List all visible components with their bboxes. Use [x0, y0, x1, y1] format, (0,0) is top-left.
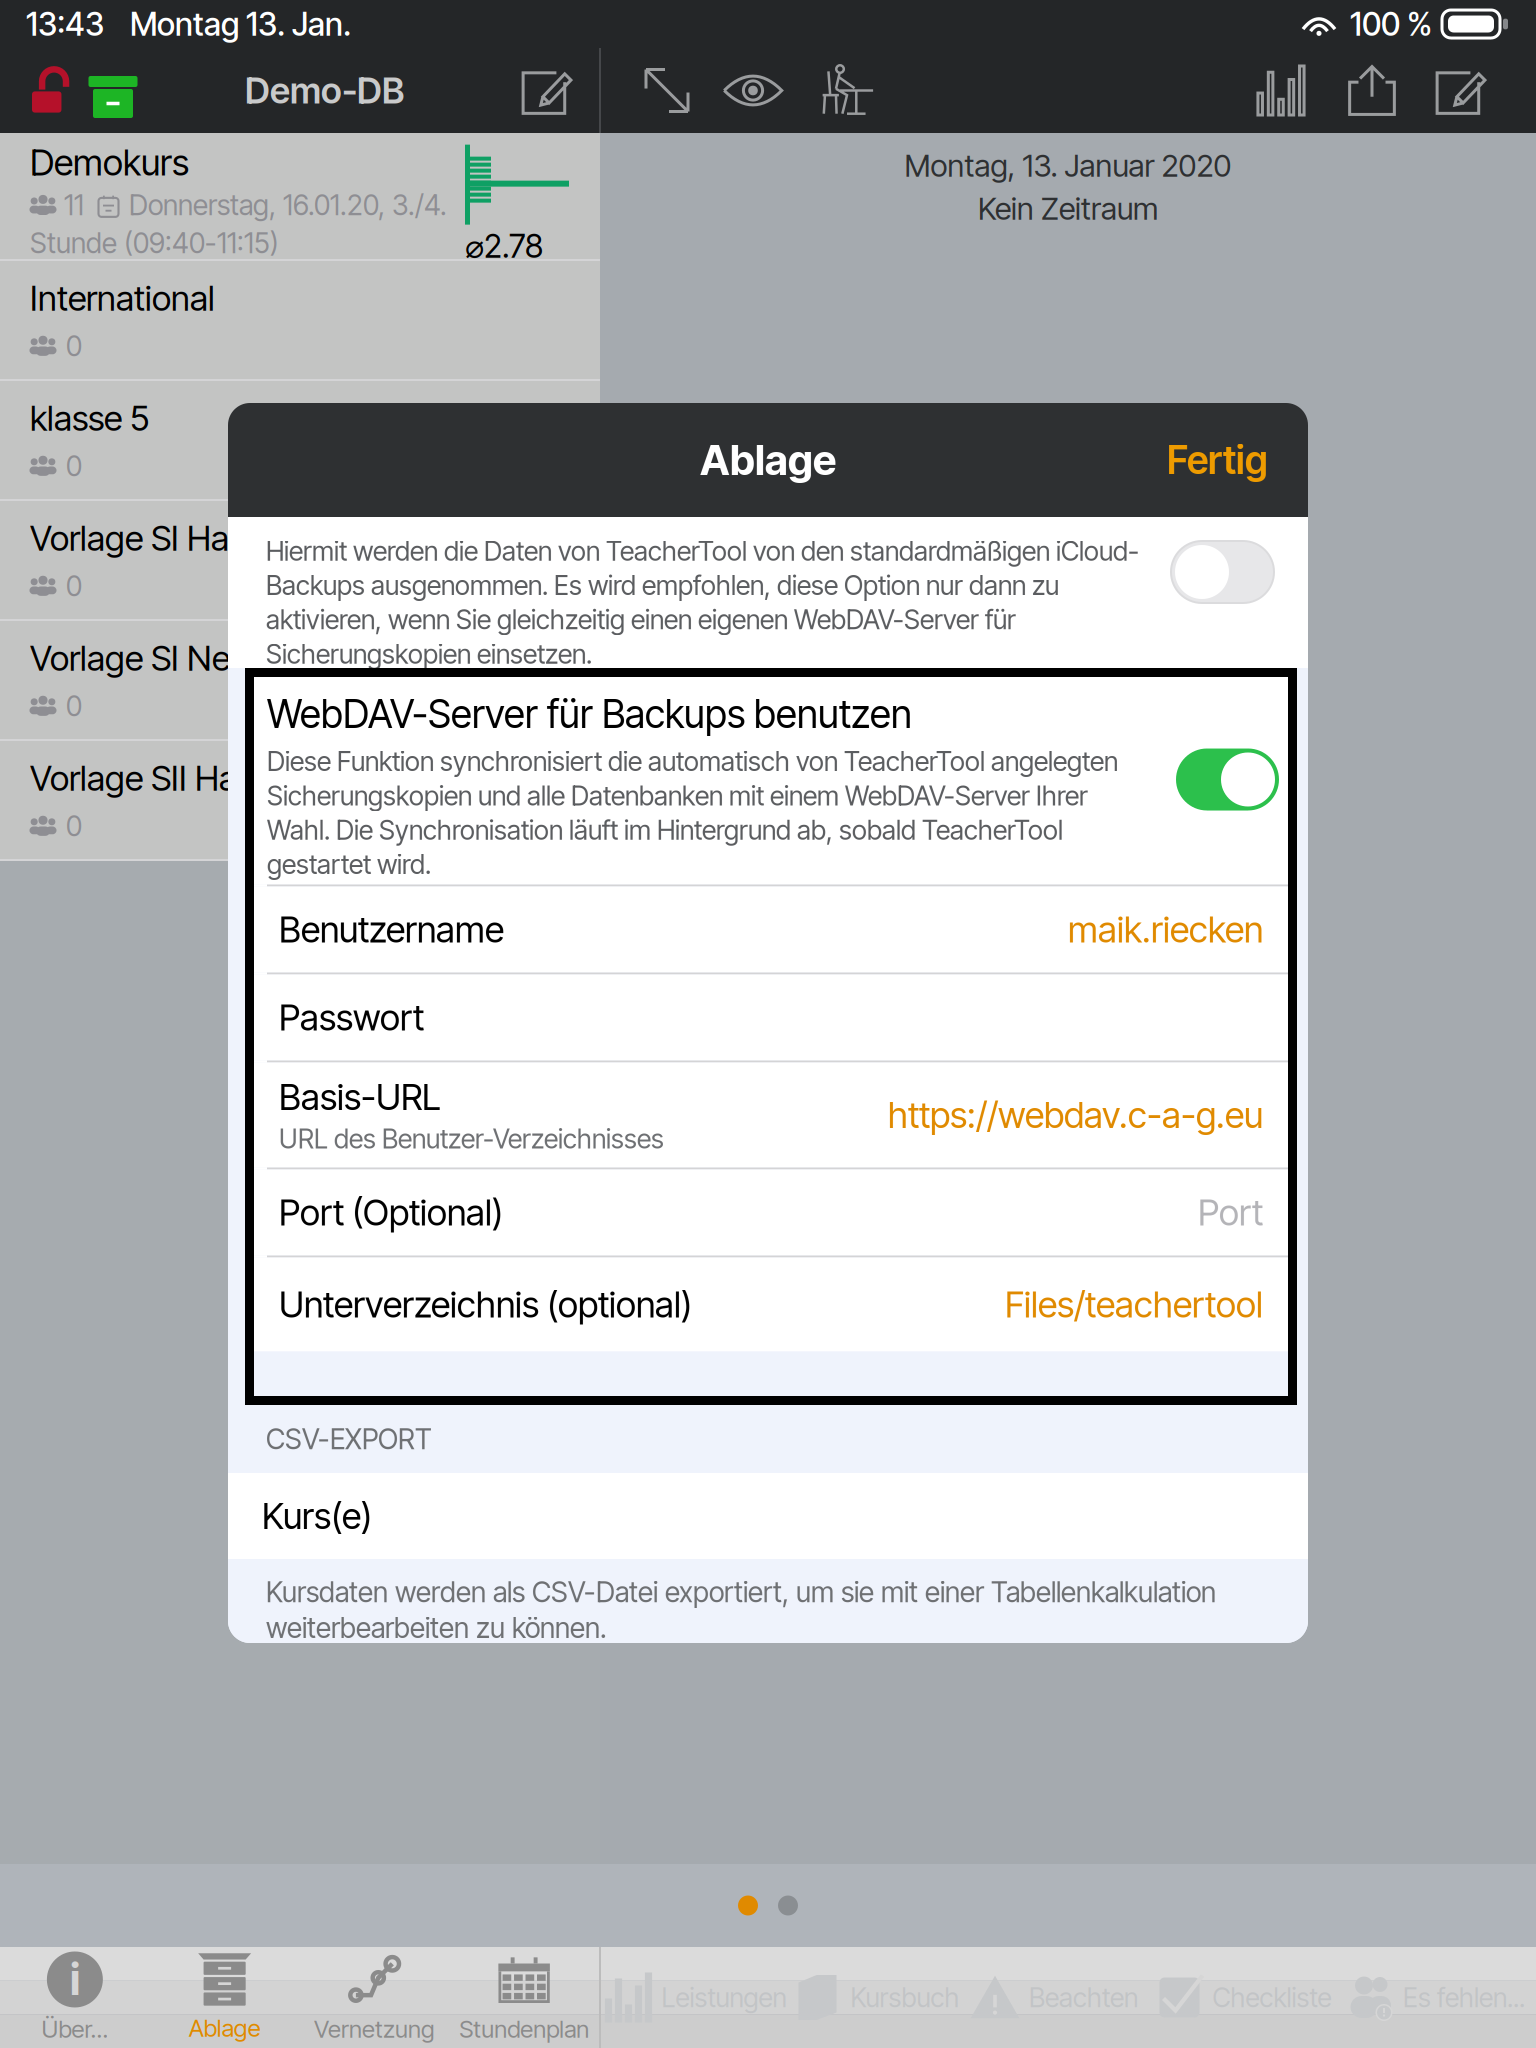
staticText: Checkliste: [1212, 1981, 1331, 2014]
staticText: 13:43: [26, 5, 104, 43]
button[interactable]: Beachten: [963, 1947, 1149, 2048]
staticText: Sicherungskopien einsetzen.: [266, 638, 592, 670]
button[interactable]: Ablage: [150, 1947, 300, 2048]
staticText: Vorlage SI Halbjahr: [30, 517, 310, 559]
button[interactable]: Teilen: [1326, 48, 1418, 133]
staticText: URL des Benutzer-Verzeichnisses: [279, 1123, 664, 1155]
button[interactable]: Port (Optional): [245, 1169, 1297, 1255]
staticText: 0: [66, 329, 82, 363]
button[interactable]: Vollbild: [629, 48, 705, 133]
staticText: Backups ausgenommen. Es wird empfohlen, …: [266, 569, 1059, 602]
staticText: Über...: [41, 2014, 108, 2043]
button[interactable]: Checkliste: [1149, 1947, 1339, 2048]
staticText: ⌀2.78: [465, 227, 543, 265]
button[interactable]: Leistungen: [601, 1947, 791, 2048]
staticText: WebDAV-Server für Backups benutzen: [267, 690, 912, 737]
staticText: Unterverzeichnis (optional): [279, 1283, 692, 1326]
staticText: Ablage: [700, 435, 836, 485]
button[interactable]: Vorlage SII Halbjahr: [0, 741, 600, 859]
button[interactable]: Demokurs: [0, 133, 600, 259]
staticText: Files/teachertool: [1005, 1283, 1263, 1326]
staticText: Montag, 13. Januar 2020: [904, 147, 1231, 184]
button[interactable]: Fertig: [1167, 437, 1268, 483]
staticText: Donnerstag, 16.01.20, 3./4.: [129, 188, 447, 222]
staticText: i: [70, 1954, 80, 2005]
button[interactable]: Statistik: [1236, 48, 1326, 133]
staticText: 0: [66, 689, 82, 723]
button[interactable]: Es fehlen...: [1339, 1947, 1536, 2048]
button[interactable]: Kurs anlegen: [511, 48, 581, 133]
button[interactable]: International: [0, 261, 600, 379]
staticText: Sicherungskopien und alle Datenbanken mi…: [267, 780, 1088, 812]
staticText: aktivieren, wenn Sie gleichzeitig einen …: [266, 603, 1016, 636]
staticText: Ablage: [189, 2013, 261, 2042]
staticText: weiterbearbeiten zu können.: [266, 1611, 607, 1645]
button[interactable]: Kurs(e): [228, 1473, 1308, 1559]
staticText: International: [30, 277, 215, 319]
staticText: Demo-DB: [245, 69, 404, 112]
staticText: Port (Optional): [279, 1191, 503, 1234]
staticText: Passwort: [279, 996, 424, 1039]
staticText: 0: [66, 809, 82, 843]
staticText: maik.riecken: [1068, 908, 1263, 951]
button[interactable]: Unterverzeichnis (optional): [245, 1257, 1297, 1351]
button[interactable]: i: [0, 1947, 150, 2048]
button[interactable]: Passwort: [245, 974, 1297, 1060]
staticText: Fertig: [1167, 437, 1268, 483]
button[interactable]: Benutzername: [245, 886, 1297, 972]
button[interactable]: klasse 5: [0, 381, 600, 499]
button[interactable]: Vorlage SI Neu: [0, 621, 600, 739]
button[interactable]: Sitzplan: [801, 48, 893, 133]
staticText: Leistungen: [661, 1981, 786, 2014]
staticText: 0: [66, 569, 82, 603]
button[interactable]: Aus: [1171, 541, 1274, 603]
button[interactable]: Ein: [1176, 748, 1279, 810]
staticText: Kursdaten werden als CSV-Datei exportier…: [266, 1575, 1216, 1609]
staticText: Kein Zeitraum: [978, 190, 1158, 227]
button[interactable]: Bearbeiten: [1418, 48, 1502, 133]
button[interactable]: Vernetzung: [299, 1947, 449, 2048]
button[interactable]: Vorlage SI Halbjahr: [0, 501, 600, 619]
staticText: Montag 13. Jan.: [130, 5, 351, 43]
staticText: Vorlage SI Neu: [30, 637, 249, 679]
button[interactable]: Datenbank sperren: [32, 48, 138, 133]
staticText: 100 %: [1350, 5, 1432, 43]
staticText: Basis-URL: [279, 1075, 441, 1119]
button[interactable]: Kursbuch: [791, 1947, 963, 2048]
staticText: Es fehlen...: [1403, 1981, 1525, 2014]
staticText: Port: [1198, 1191, 1263, 1234]
staticText: Vorlage SII Halbjahr: [30, 757, 318, 799]
staticText: CSV-EXPORT: [266, 1422, 432, 1456]
staticText: Diese Funktion synchronisiert die automa…: [267, 745, 1118, 778]
staticText: klasse 5: [30, 397, 149, 439]
staticText: Stunde (09:40-11:15): [30, 226, 279, 260]
staticText: 0: [66, 449, 82, 483]
staticText: Beachten: [1029, 1981, 1138, 2014]
staticText: Kursbuch: [850, 1981, 959, 2014]
button[interactable]: Anzeigen: [705, 48, 801, 133]
staticText: gestartet wird.: [267, 848, 431, 880]
button[interactable]: Basis-URL: [245, 1062, 1297, 1167]
staticText: Vernetzung: [314, 2014, 435, 2043]
staticText: Benutzername: [279, 908, 504, 951]
staticText: Stundenplan: [459, 2014, 589, 2043]
staticText: https://webdav.c-a-g.eu: [888, 1093, 1263, 1137]
staticText: Hiermit werden die Daten von TeacherTool…: [266, 535, 1139, 567]
staticText: Kurs(e): [262, 1494, 372, 1538]
staticText: 11: [64, 188, 84, 222]
button[interactable]: Stundenplan: [449, 1947, 599, 2048]
staticText: Demokurs: [30, 141, 189, 184]
staticText: Wahl. Die Synchronisation läuft im Hinte…: [267, 814, 1063, 846]
